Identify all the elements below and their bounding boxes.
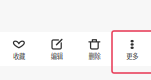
button[interactable]: 编辑 (38, 32, 76, 66)
button[interactable]: 更多 (113, 32, 151, 66)
button[interactable]: 收藏 (0, 32, 38, 66)
button[interactable]: 删除 (75, 32, 113, 66)
staticText: 更多 (126, 51, 138, 61)
staticText: 编辑 (51, 51, 63, 61)
staticText: 删除 (88, 51, 100, 61)
staticText: 收藏 (13, 51, 25, 61)
